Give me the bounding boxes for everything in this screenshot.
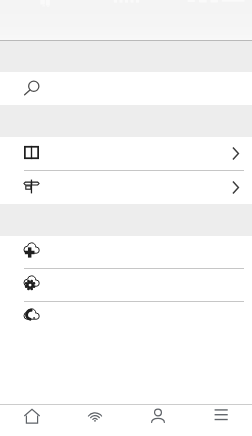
- button[interactable]: Search: [0, 72, 252, 105]
- button[interactable]: Dictionary: [0, 137, 252, 170]
- button[interactable]: Add to cloud: [0, 236, 252, 268]
- button[interactable]: Wifi: [63, 405, 126, 436]
- button[interactable]: Home: [0, 405, 63, 436]
- button[interactable]: Menu: [189, 405, 252, 436]
- other: Search: [24, 81, 40, 97]
- button[interactable]: Profile: [126, 405, 189, 436]
- button[interactable]: Cloud sync: [0, 302, 252, 334]
- button[interactable]: Directions: [0, 171, 252, 204]
- button[interactable]: Cloud settings: [0, 269, 252, 301]
